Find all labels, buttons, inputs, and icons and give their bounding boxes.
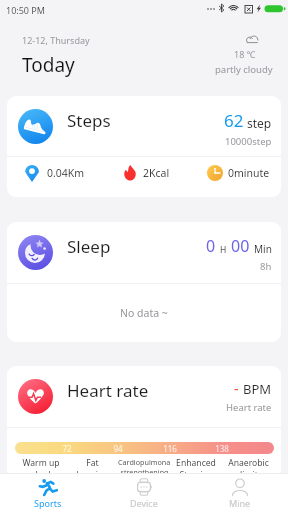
staticText: Enhanced [176,457,216,469]
staticText: Device [130,497,158,509]
staticText: Warm up [22,457,60,469]
button[interactable]: Mine [192,474,288,512]
staticText: partly cloudy [215,63,273,76]
staticText: Today [22,52,75,78]
staticText: limit [240,469,258,481]
staticText: 10000step [225,135,272,148]
staticText: 0minute [228,166,270,180]
staticText: burning [76,469,109,481]
staticText: Cardiopulmonary [118,457,170,467]
staticText: Min [254,242,272,256]
staticText: Mine [229,497,251,509]
staticText: 18 ℃ [234,48,256,60]
staticText: Heart rate [67,379,149,402]
staticText: Anaerobic [228,457,269,469]
staticText: and relax [22,469,60,481]
staticText: Sleep [67,235,111,258]
staticText: 72 [57,443,77,454]
staticText: BPM [243,380,272,398]
staticText: Heart rate [226,401,272,414]
staticText: 62 [224,109,244,132]
staticText: 0.04Km [47,166,85,180]
staticText: 94 [108,443,128,454]
staticText: Steps [67,109,111,132]
staticText: 0 [206,235,216,257]
staticText: step [247,115,272,131]
staticText: H [220,244,227,256]
staticText: - [234,379,239,398]
staticText: 2Kcal [143,166,170,180]
staticText: Stamina [179,469,213,481]
staticText: 116 [160,443,180,454]
button[interactable]: Device [96,474,192,512]
staticText: Sports [34,497,62,509]
staticText: 10:50 PM [6,4,45,16]
staticText: 8h [260,260,272,273]
staticText: Fat [86,457,99,469]
staticText: 138 [212,443,232,454]
staticText: 12-12, Thursday [22,34,90,46]
button[interactable]: Sports [0,474,96,512]
staticText: strengthening [120,467,169,477]
staticText: No data ~ [120,306,168,320]
staticText: 00 [231,235,250,257]
